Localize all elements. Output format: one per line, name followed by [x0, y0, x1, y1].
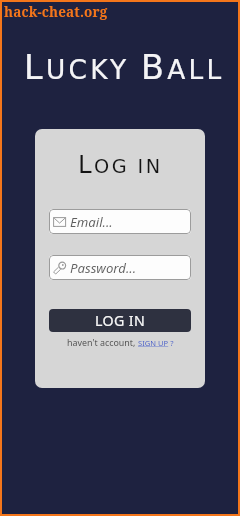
staticText: LUCKY BALL	[24, 48, 225, 87]
button[interactable]: Email	[49, 209, 191, 234]
staticText: SIGN UP ?	[138, 338, 174, 348]
staticText: LOG IN	[95, 311, 146, 330]
staticText: haven't account,	[67, 336, 138, 348]
button[interactable]: SIGN UP ?	[138, 338, 174, 348]
button[interactable]: LOG IN	[49, 309, 191, 332]
button[interactable]: Password	[49, 255, 191, 280]
staticText: Email...	[70, 213, 113, 231]
staticText: Password...	[70, 259, 137, 277]
staticText: hack-cheat.org	[4, 3, 108, 21]
staticText: LOG IN	[78, 150, 163, 179]
